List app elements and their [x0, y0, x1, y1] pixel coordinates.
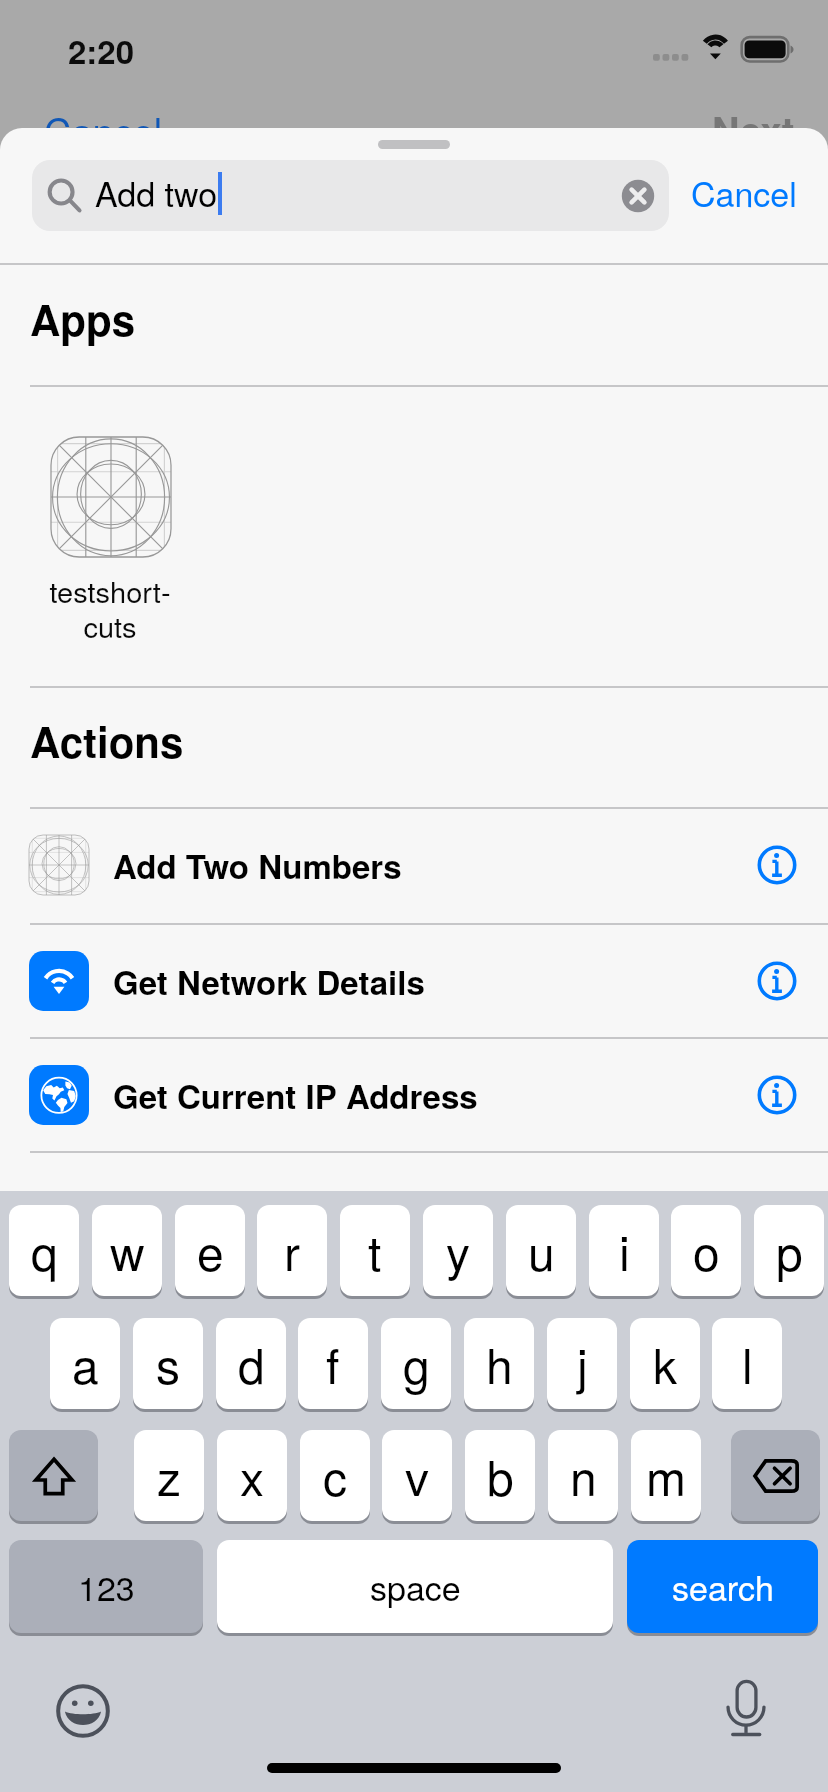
button[interactable]: f [298, 1318, 368, 1409]
staticText: a [72, 1329, 99, 1398]
staticText: Get Current IP Address [113, 1072, 478, 1119]
staticText: e [197, 1216, 224, 1285]
button[interactable]: o [671, 1205, 741, 1296]
staticText: f [326, 1329, 340, 1398]
button[interactable]: Add two [32, 160, 669, 231]
button[interactable]: Dictation [708, 1673, 784, 1749]
button[interactable]: More info [745, 949, 809, 1013]
staticText: Apps [30, 289, 136, 349]
staticText: s [156, 1329, 181, 1398]
button[interactable]: Backspace [731, 1430, 820, 1521]
staticText: n [570, 1441, 597, 1510]
staticText: z [157, 1441, 182, 1510]
staticText: search [672, 1562, 774, 1611]
button[interactable]: y [423, 1205, 493, 1296]
staticText: o [693, 1216, 720, 1285]
button[interactable]: w [92, 1205, 162, 1296]
staticText: c [323, 1441, 348, 1510]
staticText: l [742, 1329, 753, 1398]
button[interactable]: Get Current IP Address [0, 1038, 828, 1152]
button[interactable]: u [506, 1205, 576, 1296]
button[interactable]: Get Network Details [0, 924, 828, 1038]
button[interactable]: Add Two Numbers [0, 808, 828, 922]
button[interactable]: g [381, 1318, 451, 1409]
staticText: v [405, 1441, 430, 1510]
staticText: Cancel [691, 168, 797, 217]
button[interactable]: v [382, 1430, 452, 1521]
staticText: r [284, 1216, 300, 1285]
staticText: space [370, 1562, 461, 1611]
staticText: Actions [30, 711, 184, 771]
staticText: x [240, 1441, 265, 1510]
staticText: k [653, 1329, 678, 1398]
button[interactable]: j [547, 1318, 617, 1409]
staticText: 2:20 [68, 27, 135, 74]
button[interactable]: Clear text [614, 172, 662, 220]
staticText: u [528, 1216, 555, 1285]
button[interactable]: More info [745, 833, 809, 897]
staticText: p [776, 1216, 803, 1285]
staticText: w [110, 1216, 145, 1285]
button[interactable]: r [257, 1205, 327, 1296]
staticText: Get Network Details [113, 958, 425, 1005]
button[interactable]: b [465, 1430, 535, 1521]
button[interactable]: l [712, 1318, 782, 1409]
button[interactable]: p [754, 1205, 824, 1296]
staticText: Cancel [44, 102, 163, 156]
button[interactable]: i [589, 1205, 659, 1296]
button[interactable]: s [133, 1318, 203, 1409]
button[interactable]: a [50, 1318, 120, 1409]
staticText: i [619, 1216, 630, 1285]
staticText: Next [712, 102, 795, 156]
button[interactable]: c [300, 1430, 370, 1521]
button[interactable]: x [217, 1430, 287, 1521]
staticText: Add two [95, 168, 218, 217]
staticText: b [487, 1441, 514, 1510]
button[interactable]: 123 [9, 1540, 203, 1633]
button[interactable]: m [631, 1430, 701, 1521]
staticText: j [577, 1329, 588, 1398]
staticText: m [646, 1441, 686, 1510]
button[interactable]: q [9, 1205, 79, 1296]
staticText: y [446, 1216, 471, 1285]
button[interactable]: Shift [9, 1430, 98, 1521]
staticText: t [368, 1216, 382, 1285]
button[interactable]: Emoji keyboard [45, 1673, 121, 1749]
button[interactable]: h [464, 1318, 534, 1409]
button[interactable]: n [548, 1430, 618, 1521]
button[interactable]: z [134, 1430, 204, 1521]
staticText: h [486, 1329, 513, 1398]
button[interactable]: testshort- cuts [20, 428, 200, 668]
button[interactable]: Cancel [677, 160, 828, 231]
staticText: g [403, 1329, 430, 1398]
button[interactable]: space [217, 1540, 613, 1633]
staticText: q [31, 1216, 58, 1285]
button[interactable]: search [627, 1540, 818, 1633]
button[interactable]: e [175, 1205, 245, 1296]
staticText: d [238, 1329, 265, 1398]
staticText: Add Two Numbers [113, 842, 402, 889]
button[interactable]: More info [745, 1063, 809, 1127]
staticText: 123 [78, 1562, 135, 1611]
button[interactable]: d [216, 1318, 286, 1409]
staticText: testshort- cuts [20, 570, 200, 646]
button[interactable]: t [340, 1205, 410, 1296]
button[interactable]: k [630, 1318, 700, 1409]
